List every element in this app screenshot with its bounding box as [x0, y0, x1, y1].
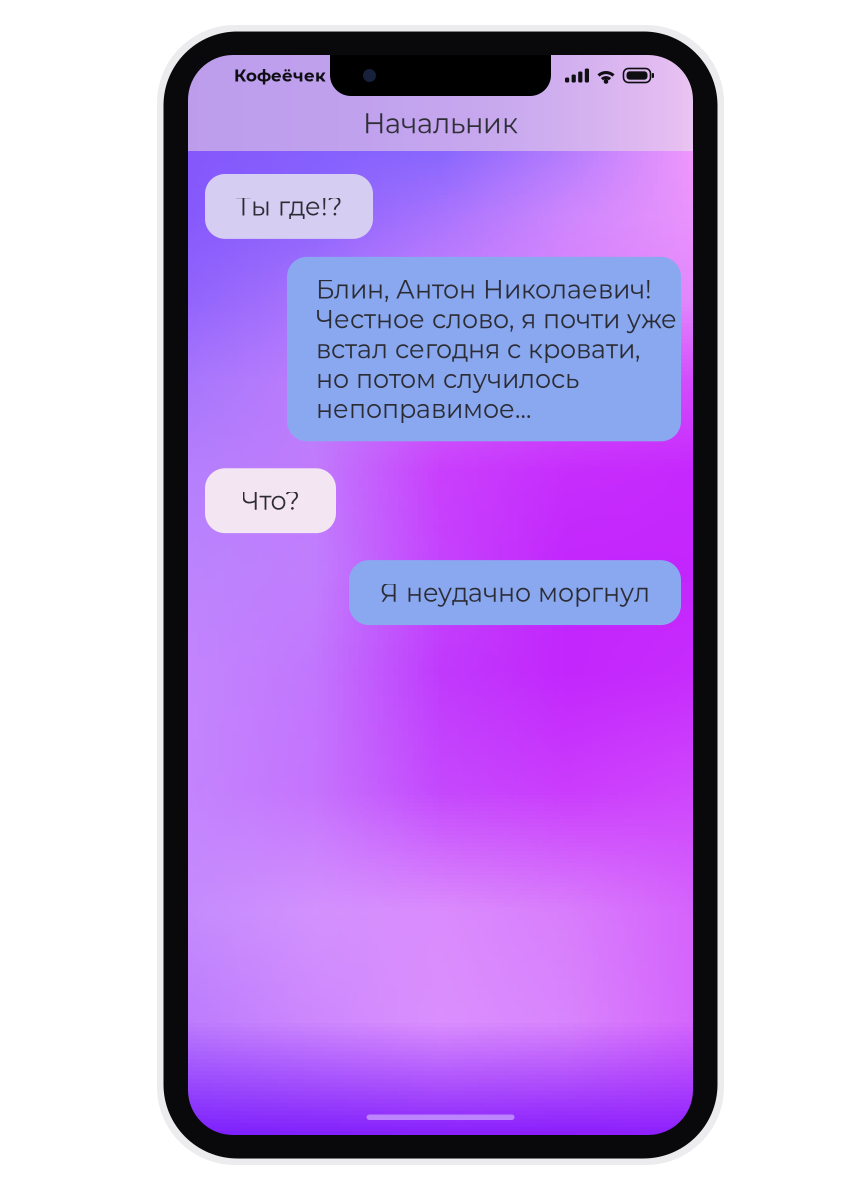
button[interactable]: Начальник: [188, 96, 693, 151]
staticText: Ты где!?: [236, 191, 342, 222]
staticText: но потом случилось: [316, 363, 579, 394]
button[interactable]: Ты где!?: [205, 174, 373, 239]
staticText: непоправимое…: [316, 393, 531, 424]
button[interactable]: Блин, Антон Николаевич!: [287, 257, 681, 441]
staticText: Я неудачно моргнул: [380, 577, 650, 608]
staticText: встал сегодня с кровати,: [316, 334, 640, 364]
staticText: Блин, Антон Николаевич!: [316, 274, 652, 305]
staticText: Кофеёчек: [234, 65, 326, 86]
staticText: Что?: [241, 485, 299, 516]
staticText: Начальник: [363, 107, 518, 140]
staticText: Честное слово, я почти уже: [316, 304, 677, 335]
button[interactable]: Я неудачно моргнул: [349, 560, 681, 625]
button[interactable]: Что?: [205, 468, 336, 533]
